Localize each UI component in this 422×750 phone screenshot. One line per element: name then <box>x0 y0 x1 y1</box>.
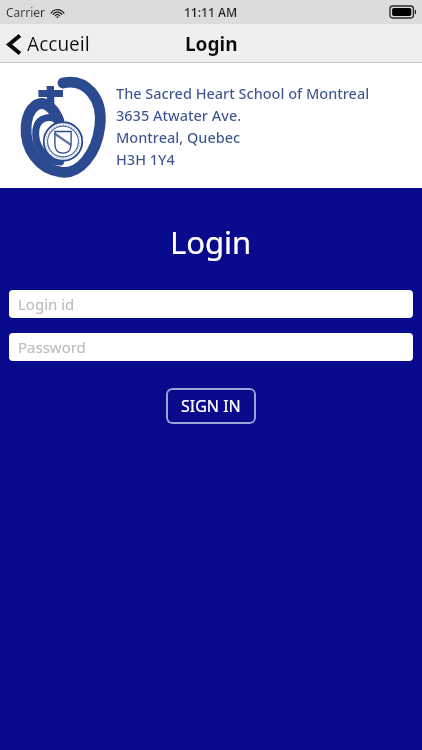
button[interactable]: SIGN IN <box>166 388 256 424</box>
staticText: Login id <box>18 294 75 314</box>
other: Battery full <box>390 6 416 18</box>
staticText: Accueil <box>27 31 90 57</box>
other: Sacred Heart School logo <box>22 76 104 176</box>
button[interactable]: Accueil <box>0 27 100 61</box>
button[interactable]: Password <box>9 333 413 361</box>
other: Wi-Fi signal <box>51 7 64 18</box>
staticText: H3H 1Y4 <box>116 149 175 169</box>
staticText: Login <box>170 221 252 263</box>
staticText: Login <box>185 31 238 57</box>
staticText: 11:11 AM <box>184 4 238 20</box>
staticText: Montreal, Quebec <box>116 127 241 147</box>
staticText: The Sacred Heart School of Montreal <box>116 83 370 103</box>
staticText: Carrier <box>6 4 46 20</box>
staticText: 3635 Atwater Ave. <box>116 105 242 125</box>
staticText: SIGN IN <box>181 395 241 417</box>
button[interactable]: Login id <box>9 290 413 318</box>
staticText: Password <box>18 337 86 357</box>
